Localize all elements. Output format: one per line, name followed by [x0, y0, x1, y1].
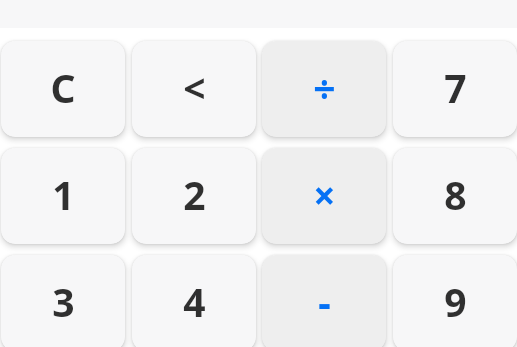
staticText: × [313, 168, 336, 221]
button[interactable]: Three [1, 255, 125, 347]
button[interactable]: Eight [393, 148, 517, 244]
button[interactable]: Two [132, 148, 256, 244]
staticText: 7 [444, 61, 467, 114]
staticText: 8 [444, 168, 467, 221]
staticText: 1 [52, 168, 75, 221]
staticText: 4 [183, 275, 206, 328]
button[interactable]: One [1, 148, 125, 244]
button[interactable]: Four [132, 255, 256, 347]
staticText: 9 [444, 275, 467, 328]
staticText: 3 [52, 275, 75, 328]
button[interactable]: Clear [1, 41, 125, 137]
button[interactable]: Backspace [132, 41, 256, 137]
button[interactable]: Seven [393, 41, 517, 137]
button[interactable]: Nine [393, 255, 517, 347]
button[interactable]: Divide [262, 41, 386, 137]
button[interactable]: Multiply [262, 148, 386, 244]
staticText: ÷ [313, 61, 336, 114]
staticText: 2 [183, 168, 206, 221]
staticText: C [50, 61, 76, 114]
staticText: < [183, 61, 206, 114]
button[interactable]: Minus [262, 255, 386, 347]
staticText: - [318, 275, 331, 328]
